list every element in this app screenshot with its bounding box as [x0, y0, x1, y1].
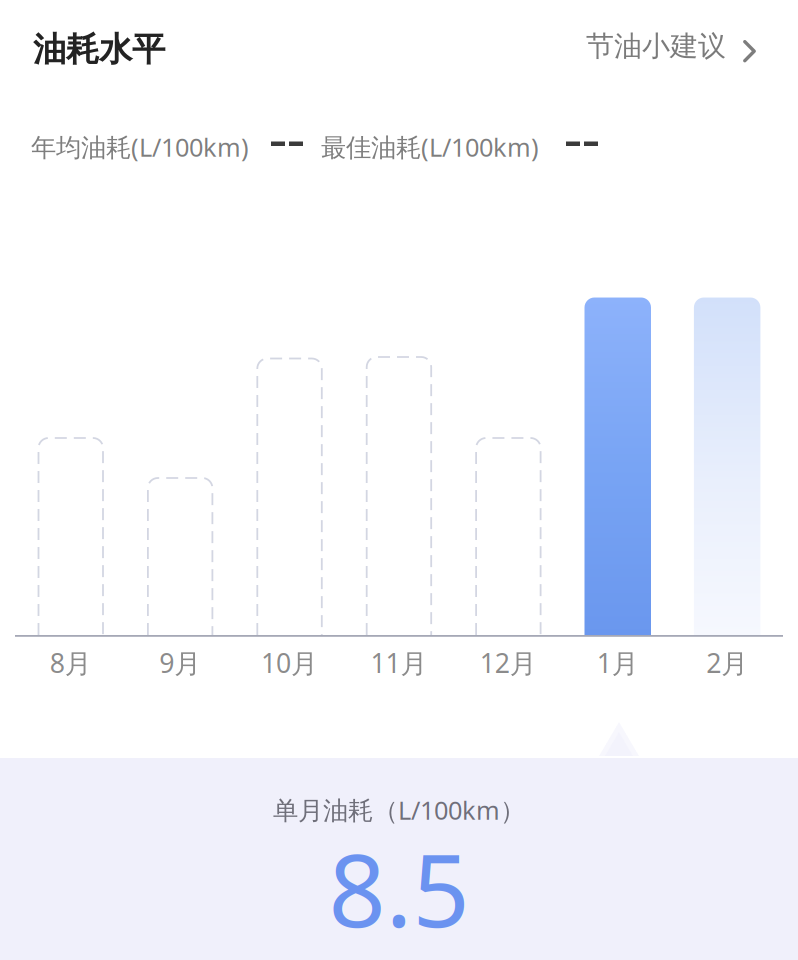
- staticText: 2月: [706, 645, 748, 680]
- staticText: 12月: [480, 645, 537, 680]
- staticText: 8.5: [328, 822, 469, 955]
- staticText: 年均油耗(L/100km): [31, 130, 249, 164]
- staticText: 节油小建议: [586, 29, 726, 63]
- staticText: 1月: [597, 645, 639, 680]
- button[interactable]: 节油小建议: [586, 29, 756, 63]
- staticText: 油耗水平: [33, 29, 165, 70]
- staticText: 8月: [50, 645, 92, 680]
- staticText: 最佳油耗(L/100km): [321, 130, 539, 164]
- staticText: 单月油耗（L/100km）: [273, 793, 525, 827]
- staticText: 9月: [159, 645, 201, 680]
- staticText: 11月: [370, 645, 427, 680]
- staticText: 10月: [261, 645, 318, 680]
